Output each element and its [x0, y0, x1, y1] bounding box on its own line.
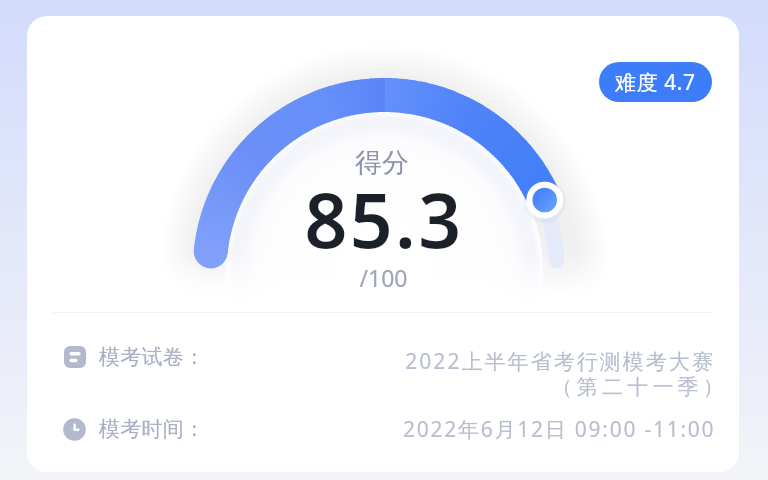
- other: Exam time: [63, 418, 86, 441]
- staticText: 难度 4.7: [615, 68, 696, 97]
- other: Exam paper: [64, 346, 86, 368]
- button[interactable]: 难度 4.7: [599, 62, 712, 102]
- button[interactable]: Exam time: [57, 404, 715, 454]
- staticText: （第二十一季）: [551, 374, 728, 400]
- staticText: 模考试卷：: [99, 344, 205, 370]
- staticText: 2022年6月12日 09:00 -11:00: [403, 415, 716, 444]
- button[interactable]: Exam paper: [57, 341, 715, 403]
- staticText: 模考时间：: [99, 416, 205, 442]
- staticText: 2022上半年省考行测模考大赛: [405, 347, 715, 376]
- staticText: 得分: [355, 146, 409, 180]
- staticText: /100: [359, 262, 408, 293]
- staticText: 85.3: [304, 168, 464, 270]
